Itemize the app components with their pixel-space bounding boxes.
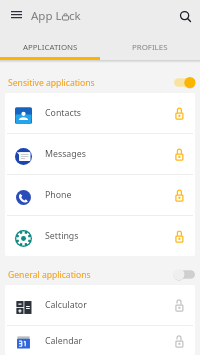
button[interactable]: Search bbox=[175, 6, 195, 26]
staticText: Sensitive applications bbox=[8, 77, 95, 89]
button[interactable]: PROFILES bbox=[100, 35, 200, 59]
staticText: PROFILES bbox=[132, 42, 168, 53]
staticText: Settings bbox=[45, 230, 79, 242]
button[interactable]: APPLICATIONS bbox=[0, 35, 100, 59]
staticText: App L bbox=[31, 8, 62, 24]
staticText: General applications bbox=[8, 269, 91, 281]
button[interactable]: Contacts bbox=[5, 93, 195, 133]
button[interactable]: Menu bbox=[4, 2, 28, 26]
staticText: Phone bbox=[45, 189, 72, 201]
staticText: Contacts bbox=[45, 107, 82, 119]
button[interactable]: Calendar bbox=[5, 326, 195, 355]
staticText: Calendar bbox=[45, 335, 83, 347]
button[interactable]: Toggle Sensitive applications bbox=[174, 77, 195, 88]
button[interactable]: Calculator bbox=[5, 285, 195, 325]
staticText: Calculator bbox=[45, 299, 87, 311]
staticText: ck bbox=[69, 8, 81, 24]
button[interactable]: Toggle General applications bbox=[174, 269, 195, 280]
button[interactable]: Phone bbox=[5, 175, 195, 215]
staticText: APPLICATIONS bbox=[23, 42, 78, 53]
button[interactable]: Messages bbox=[5, 134, 195, 174]
staticText: Messages bbox=[45, 148, 86, 160]
button[interactable]: Settings bbox=[5, 216, 195, 256]
